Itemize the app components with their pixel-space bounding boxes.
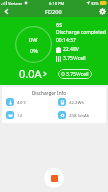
- button[interactable]: Stop: [44, 168, 64, 188]
- staticText: 208.6mAh: [69, 112, 90, 118]
- staticText: 3.75V/cell: [66, 71, 89, 78]
- staticText: 0W: [29, 36, 38, 43]
- staticText: Discharge completed: [56, 29, 106, 36]
- button[interactable]: Settings: [96, 6, 108, 17]
- staticText: 6:18 PM: [49, 1, 65, 6]
- staticText: 44°C: [17, 99, 27, 105]
- staticText: 22.48V: [63, 46, 79, 53]
- staticText: 14: [17, 112, 22, 118]
- button[interactable]: 0.0A: [19, 66, 48, 81]
- staticText: 0%: [30, 47, 38, 54]
- staticText: 6S: [56, 21, 63, 28]
- staticText: Verizon: [8, 1, 23, 6]
- button[interactable]: 3.75V/cell: [58, 69, 92, 79]
- staticText: Discharger Info: [32, 90, 67, 96]
- staticText: 3.75V/cell: [63, 55, 86, 62]
- staticText: FD200: [45, 8, 62, 16]
- button[interactable]: Back: [0, 6, 12, 17]
- staticText: 92%: [91, 1, 99, 6]
- staticText: 00:14:37: [56, 37, 76, 44]
- staticText: 42.2Wh: [69, 99, 85, 105]
- staticText: 0.0A: [19, 66, 42, 81]
